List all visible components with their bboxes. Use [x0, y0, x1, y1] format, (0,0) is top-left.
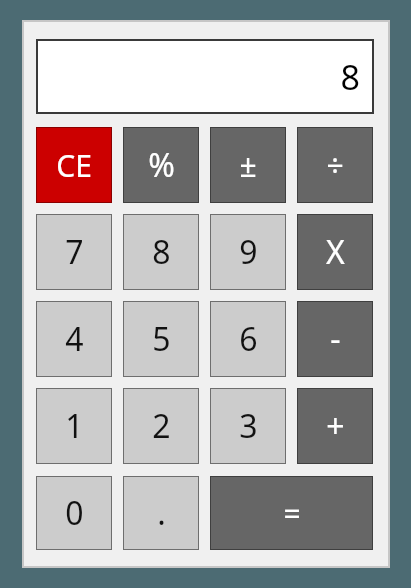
- button[interactable]: CE: [36, 127, 112, 203]
- button[interactable]: 6: [210, 301, 286, 377]
- button[interactable]: 8: [123, 214, 199, 290]
- button[interactable]: 2: [123, 388, 199, 464]
- staticText: %: [148, 143, 175, 187]
- staticText: =: [283, 493, 301, 534]
- staticText: ±: [239, 145, 257, 186]
- button[interactable]: 3: [210, 388, 286, 464]
- staticText: 1: [65, 404, 84, 448]
- button[interactable]: Add: [297, 388, 373, 464]
- staticText: X: [326, 230, 345, 274]
- button[interactable]: Plus minus: [210, 127, 286, 203]
- button[interactable]: 9: [210, 214, 286, 290]
- staticText: 6: [239, 317, 258, 361]
- staticText: 8: [340, 54, 360, 100]
- staticText: 4: [65, 317, 84, 361]
- staticText: 9: [239, 230, 258, 274]
- staticText: 2: [152, 404, 171, 448]
- button[interactable]: 0: [36, 476, 112, 550]
- button[interactable]: Subtract: [297, 301, 373, 377]
- staticText: 3: [239, 404, 258, 448]
- staticText: 8: [152, 230, 171, 274]
- staticText: ÷: [326, 145, 344, 186]
- staticText: 5: [152, 317, 171, 361]
- button[interactable]: Equals: [210, 476, 373, 550]
- button[interactable]: 5: [123, 301, 199, 377]
- staticText: -: [330, 317, 341, 361]
- button[interactable]: Multiply: [297, 214, 373, 290]
- button[interactable]: 4: [36, 301, 112, 377]
- staticText: +: [326, 404, 345, 448]
- staticText: CE: [56, 145, 92, 186]
- button[interactable]: %: [123, 127, 199, 203]
- button[interactable]: 7: [36, 214, 112, 290]
- button[interactable]: 1: [36, 388, 112, 464]
- staticText: 0: [65, 491, 84, 535]
- button[interactable]: Decimal point: [123, 476, 199, 550]
- staticText: 7: [65, 230, 84, 274]
- staticText: .: [157, 491, 166, 535]
- button[interactable]: Divide: [297, 127, 373, 203]
